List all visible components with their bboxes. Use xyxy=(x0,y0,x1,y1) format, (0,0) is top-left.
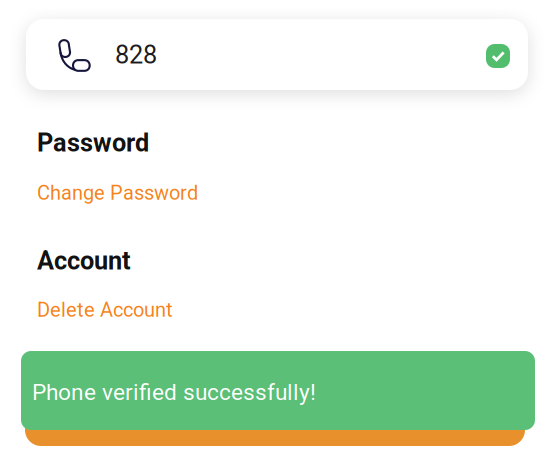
staticText: Password xyxy=(37,128,149,158)
staticText: Change Password xyxy=(37,181,198,205)
staticText: Delete Account xyxy=(37,298,173,322)
staticText: 828 xyxy=(115,40,157,70)
staticText: Account xyxy=(37,246,131,276)
staticText: Phone verified successfully! xyxy=(32,379,316,406)
button[interactable]: 828 xyxy=(26,19,528,90)
button[interactable]: Delete Account xyxy=(37,296,217,324)
button[interactable]: Save xyxy=(25,360,525,446)
button[interactable]: Change Password xyxy=(37,179,237,207)
